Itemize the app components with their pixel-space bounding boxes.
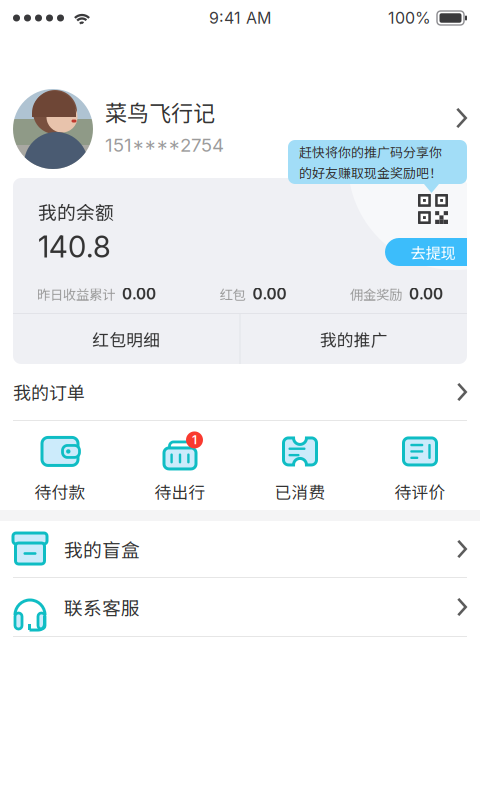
staticText: 菜鸟飞行记 bbox=[105, 96, 215, 128]
staticText: 我的盲盒 bbox=[64, 535, 140, 562]
staticText: 已消费 bbox=[274, 479, 325, 503]
staticText: 红包明细 bbox=[92, 327, 160, 351]
button[interactable]: 我的推广 bbox=[240, 314, 467, 364]
staticText: 我的推广 bbox=[320, 327, 388, 351]
staticText: 151****2754 bbox=[105, 134, 224, 156]
staticText: 140.8 bbox=[38, 229, 111, 264]
staticText: 1 bbox=[192, 433, 197, 447]
staticText: 待评价 bbox=[394, 479, 445, 503]
staticText: 去提现 bbox=[410, 241, 455, 263]
staticText: 昨日收益累计 bbox=[37, 284, 115, 304]
button[interactable]: 已消费 bbox=[240, 419, 360, 511]
staticText: 我的订单 bbox=[13, 379, 85, 405]
button[interactable]: 联系客服 bbox=[0, 578, 480, 637]
button[interactable]: 待评价 bbox=[360, 419, 480, 511]
button[interactable]: 待付款 bbox=[0, 419, 120, 511]
staticText: 的好友赚取现金奖励吧！ bbox=[299, 163, 442, 182]
staticText: 待出行 bbox=[154, 479, 205, 503]
button[interactable]: 红包明细 bbox=[13, 314, 239, 364]
staticText: 0.00 bbox=[409, 285, 443, 303]
staticText: 9:41 AM bbox=[209, 8, 271, 28]
button[interactable]: 我的盲盒 bbox=[0, 521, 480, 578]
staticText: 待付款 bbox=[34, 479, 85, 503]
button[interactable]: 菜鸟飞行记 bbox=[0, 36, 480, 178]
staticText: 0.00 bbox=[122, 285, 156, 303]
staticText: 红包 bbox=[219, 284, 245, 304]
button[interactable]: 1 bbox=[120, 419, 240, 511]
staticText: 100% bbox=[388, 8, 431, 28]
staticText: 佣金奖励 bbox=[350, 284, 402, 304]
button[interactable]: 去提现 bbox=[385, 238, 467, 266]
staticText: 赶快将你的推广码分享你 bbox=[299, 142, 442, 161]
button[interactable]: 我的订单 bbox=[0, 364, 480, 421]
staticText: 我的余额 bbox=[38, 198, 114, 225]
staticText: 联系客服 bbox=[64, 593, 140, 620]
staticText: 0.00 bbox=[252, 285, 286, 303]
